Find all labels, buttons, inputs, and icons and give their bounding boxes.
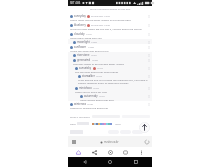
staticText: autumnsky <box>84 94 98 98</box>
staticText: that part needs to be checked again i gu… <box>73 62 124 65</box>
staticText: reset <box>115 122 121 125</box>
button[interactable]: sunnyday <box>68 13 152 22</box>
button[interactable]: Bookmark <box>105 147 116 157</box>
button[interactable]: sunsetsky <box>68 65 152 73</box>
staticText: see all comments written on this post <box>90 8 131 11</box>
button[interactable]: Home <box>101 157 119 167</box>
staticText: 2019.04.06. 14:22 <box>91 15 110 18</box>
staticText: 14:52 <box>91 41 97 44</box>
staticText: 15:24 <box>93 87 99 90</box>
button[interactable]: greenwind <box>68 57 152 65</box>
button[interactable]: More options <box>136 147 147 157</box>
staticText: i was curious about that part <box>80 98 114 101</box>
button[interactable]: Reload <box>144 139 149 144</box>
staticText: sunsetsky <box>79 66 92 70</box>
button[interactable]: mintchoco <box>68 85 152 93</box>
button[interactable]: riverstone <box>68 52 152 57</box>
staticText: wintersea <box>74 102 86 106</box>
staticText: 2019.04.06. 14:30 <box>91 24 110 27</box>
staticText: i think the same way about it too <box>70 49 109 52</box>
staticText: blueberry <box>74 23 86 27</box>
staticText: 14:41 <box>86 33 92 36</box>
staticText: is this for real? where did you see it, … <box>70 27 142 30</box>
staticText: SKT 4:06 <box>70 1 81 5</box>
button[interactable]: Share <box>89 147 100 157</box>
button[interactable]: blueberry <box>68 22 152 31</box>
staticText: 15:18 <box>96 75 102 78</box>
staticText: cloudsky <box>74 32 85 36</box>
staticText: sunnyday <box>74 14 86 18</box>
staticText: 14:58 <box>88 46 94 49</box>
button[interactable]: Tabs <box>120 147 131 157</box>
staticText: haha totally agree with you <box>70 36 102 39</box>
button[interactable]: Recent apps <box>127 157 145 167</box>
staticText: 15:10 <box>97 67 103 70</box>
staticText: 15:40 <box>87 103 93 106</box>
button[interactable]: autumnsky <box>68 93 152 101</box>
button[interactable]: moonlight <box>68 39 152 44</box>
staticText: mintchoco <box>79 86 92 90</box>
button[interactable]: sunflower <box>68 44 152 52</box>
staticText: thank you so much for that <box>75 90 107 93</box>
staticText: write a comment <box>70 115 90 118</box>
button[interactable]: Home <box>73 147 84 157</box>
staticText: to be precise that is not quite the mean… <box>78 78 150 84</box>
staticText: moonlight <box>77 40 90 44</box>
staticText: m.site.co.kr <box>104 140 119 144</box>
staticText: thanks for sharing the good info <box>70 106 109 109</box>
button[interactable]: starwalker <box>68 73 152 85</box>
button[interactable]: Tabs <box>71 139 76 144</box>
staticText: 15:01 <box>91 54 97 57</box>
staticText: you are right about that hehe thanks <box>75 70 119 73</box>
button[interactable]: cloudsky <box>68 31 152 39</box>
button[interactable]: Scroll to top <box>139 122 150 133</box>
button[interactable]: wintersea <box>68 101 152 110</box>
button[interactable]: Back <box>76 157 94 167</box>
staticText: riverstone <box>77 53 90 57</box>
staticText: sunflower <box>74 45 87 49</box>
button[interactable]: m.site.co.kr <box>100 140 119 144</box>
staticText: 15:31 <box>99 95 105 98</box>
staticText: color <box>70 122 76 125</box>
staticText: that is really not the point i guess lol… <box>70 18 131 21</box>
staticText: 15:02 <box>92 59 98 62</box>
staticText: greenwind <box>77 58 91 62</box>
staticText: starwalker <box>82 74 95 78</box>
